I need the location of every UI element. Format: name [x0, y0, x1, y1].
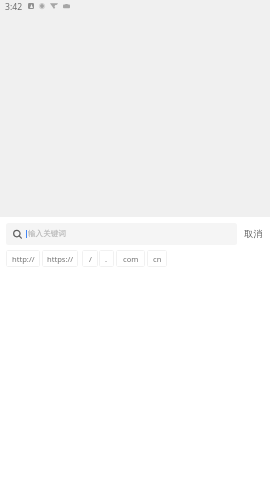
staticText: cn — [153, 254, 162, 264]
button[interactable]: cn — [147, 250, 167, 267]
button[interactable]: 取消 — [237, 223, 270, 245]
staticText: com — [123, 254, 139, 264]
staticText: / — [89, 254, 92, 264]
staticText: 3:42 — [5, 1, 23, 13]
button[interactable]: http:// — [6, 250, 40, 267]
other: Search — [13, 230, 22, 239]
staticText: https:// — [47, 254, 74, 264]
button[interactable]: com — [116, 250, 145, 267]
button[interactable]: https:// — [42, 250, 78, 267]
staticText: http:// — [12, 254, 35, 264]
staticText: 取消 — [244, 228, 263, 240]
staticText: 输入关键词 — [28, 229, 66, 239]
button[interactable]: . — [99, 250, 114, 267]
button[interactable]: Search — [6, 223, 237, 245]
button[interactable]: / — [82, 250, 98, 267]
staticText: . — [105, 254, 108, 264]
